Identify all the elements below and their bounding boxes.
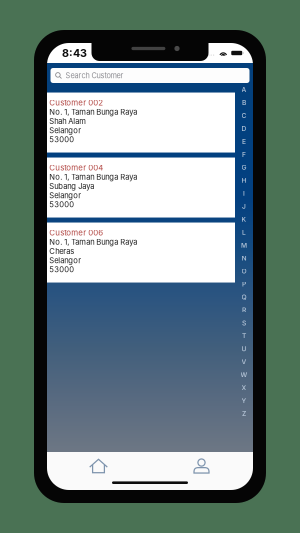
- staticText: U: [241, 345, 246, 353]
- staticText: No. 1, Taman Bunga Raya: [49, 237, 137, 247]
- button[interactable]: Profile: [150, 456, 253, 476]
- staticText: N: [241, 254, 246, 262]
- staticText: O: [241, 267, 246, 275]
- staticText: 53000: [49, 200, 74, 209]
- staticText: K: [241, 215, 246, 223]
- staticText: E: [242, 137, 246, 146]
- staticText: C: [241, 112, 246, 120]
- staticText: H: [241, 176, 246, 184]
- staticText: Z: [242, 410, 246, 418]
- staticText: Customer 004: [49, 163, 103, 172]
- staticText: X: [241, 384, 246, 392]
- staticText: 8:43: [62, 46, 87, 59]
- staticText: Cheras: [49, 247, 74, 256]
- staticText: Q: [241, 293, 246, 301]
- staticText: S: [242, 319, 246, 327]
- staticText: No. 1, Taman Bunga Raya: [49, 172, 137, 182]
- staticText: Customer 006: [49, 228, 103, 237]
- button[interactable]: Customer 004: [47, 157, 235, 217]
- staticText: Selangor: [49, 126, 81, 135]
- staticText: G: [241, 163, 246, 171]
- staticText: F: [242, 150, 246, 158]
- staticText: 53000: [49, 265, 74, 274]
- staticText: J: [242, 202, 246, 210]
- staticText: B: [242, 99, 246, 107]
- staticText: Selangor: [49, 256, 81, 265]
- staticText: Shah Alam: [49, 117, 86, 126]
- button[interactable]: Customer 002: [47, 92, 235, 152]
- staticText: Search Customer: [65, 71, 123, 80]
- button[interactable]: Home: [47, 456, 150, 476]
- staticText: P: [242, 280, 246, 288]
- staticText: Subang Jaya: [49, 182, 94, 191]
- staticText: L: [242, 228, 246, 236]
- staticText: V: [241, 358, 246, 366]
- staticText: No. 1, Taman Bunga Raya: [49, 107, 137, 117]
- button[interactable]: Customer 006: [47, 222, 235, 282]
- staticText: Y: [241, 397, 246, 405]
- staticText: W: [240, 371, 247, 379]
- staticText: R: [242, 306, 246, 314]
- staticText: M: [241, 241, 247, 249]
- staticText: Selangor: [49, 191, 81, 200]
- staticText: A: [241, 86, 246, 94]
- staticText: 53000: [49, 135, 74, 144]
- staticText: Customer 002: [49, 98, 103, 107]
- staticText: I: [243, 189, 245, 197]
- staticText: D: [241, 124, 246, 133]
- staticText: T: [242, 332, 246, 340]
